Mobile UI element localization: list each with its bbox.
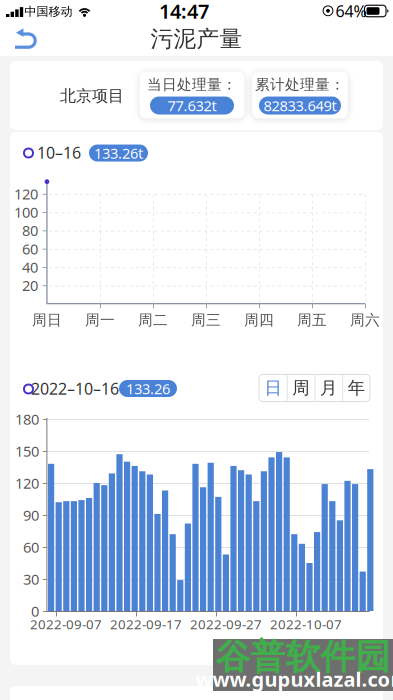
staticText: 100 [14,202,38,222]
staticText: 133.26t [94,143,143,163]
staticText: 120 [15,473,39,493]
staticText: 2022-09-07 [30,615,102,633]
staticText: 周三 [191,311,221,329]
staticText: 周四 [244,311,274,329]
staticText: 133.26 [126,379,170,398]
staticText: 日 [264,377,281,399]
staticText: 2022-09-27 [190,615,262,633]
staticText: 20 [22,276,38,295]
button[interactable]: 累计处理量： [252,71,348,118]
staticText: 180 [15,409,39,429]
staticText: 月 [320,377,337,399]
button[interactable]: 年 [342,375,370,401]
staticText: 周二 [138,311,168,329]
staticText: 2022-09-17 [110,615,182,633]
staticText: 150 [15,441,39,461]
staticText: 14:47 [159,0,209,24]
staticText: 40 [22,257,38,277]
button[interactable]: 月 [314,375,342,401]
staticText: 污泥产量 [150,25,242,53]
button[interactable]: 周 [287,375,315,401]
staticText: 82833.649t [263,96,336,115]
button[interactable]: 日 [259,375,287,401]
staticText: 2022-10-07 [270,615,342,633]
staticText: 周六 [350,311,380,329]
staticText: 周 [292,377,309,399]
staticText: 77.632t [167,96,216,115]
staticText: 0 [31,601,39,621]
staticText: 中国移动 [24,4,72,19]
staticText: 周五 [297,311,327,329]
staticText: 80 [22,221,38,240]
staticText: 当日处理量： [147,75,237,93]
staticText: 60 [22,239,38,258]
button[interactable]: 返回 [4,22,48,56]
staticText: 10–16 [37,142,81,163]
staticText: 90 [23,505,39,525]
button[interactable]: 当日处理量： [139,71,244,118]
staticText: 2022–10–16 [31,378,119,399]
staticText: 120 [14,184,38,204]
staticText: 北京项目 [60,86,124,106]
staticText: www.gupuxlazal.com [195,666,393,692]
staticText: 谷普软件园 [215,636,390,678]
staticText: 周日 [32,311,62,329]
staticText: 30 [23,569,39,589]
staticText: 64% [335,0,366,22]
staticText: 累计处理量： [255,75,345,93]
staticText: 周一 [85,311,115,329]
staticText: 60 [23,537,39,557]
staticText: 年 [348,377,365,399]
